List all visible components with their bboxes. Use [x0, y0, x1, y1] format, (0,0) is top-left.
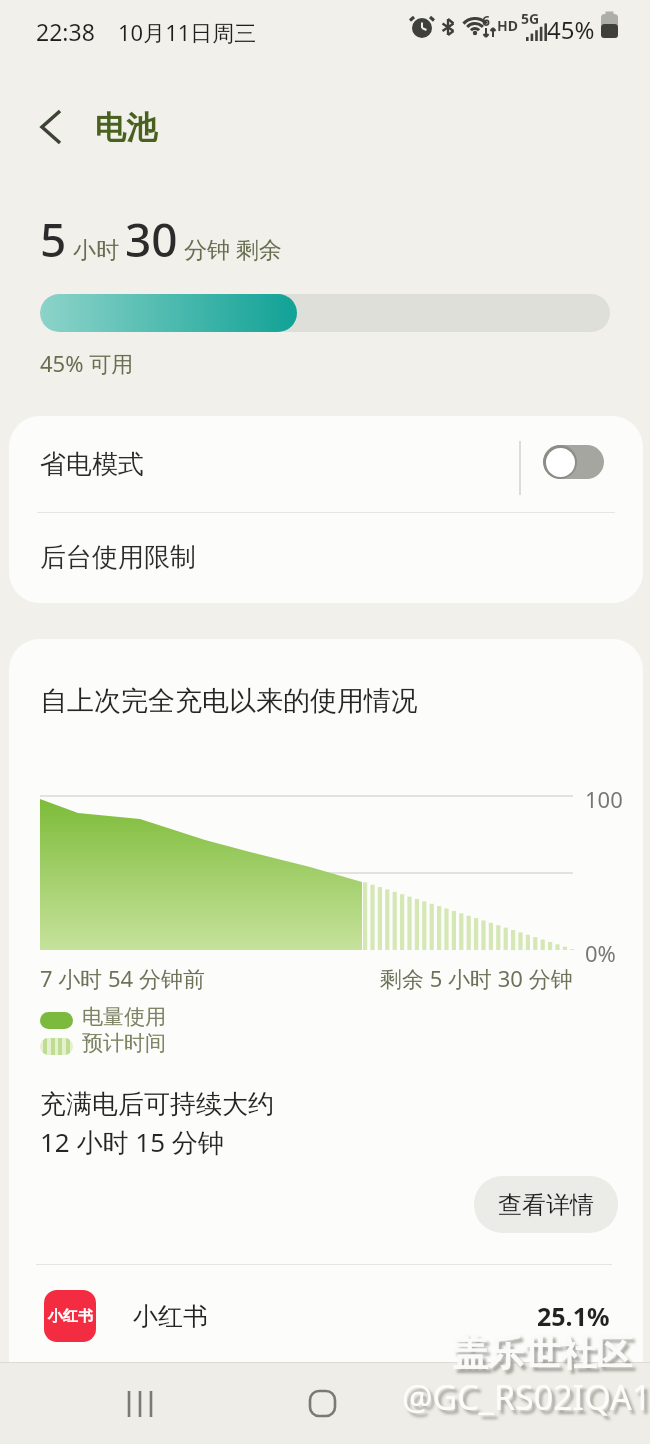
staticText: 电池 [95, 108, 157, 147]
staticText: 预计时间 [82, 1030, 166, 1056]
staticText: @GC_RS02IQA1 [402, 1374, 650, 1420]
button[interactable] [28, 103, 76, 151]
button[interactable]: 后台使用限制 [9, 512, 643, 603]
staticText: 22:38 [36, 16, 95, 47]
staticText: 5 [40, 208, 67, 271]
staticText: 电量使用 [82, 1004, 166, 1030]
staticText: 省电模式 [40, 448, 144, 481]
staticText: 充满电后可持续大约 [40, 1088, 274, 1121]
staticText: 剩余 5 小时 30 分钟 [380, 963, 573, 993]
staticText: 分钟 剩余 [178, 233, 282, 264]
staticText: 5G [521, 9, 540, 28]
button[interactable] [115, 1377, 167, 1429]
staticText: 小时 [67, 233, 125, 264]
button[interactable] [543, 445, 604, 479]
staticText: 30 [125, 208, 178, 271]
staticText: 0% [585, 938, 616, 968]
staticText: 盖乐世社区 [452, 1330, 632, 1375]
staticText: 查看详情 [498, 1190, 594, 1220]
button[interactable]: 省电模式 [9, 416, 643, 512]
staticText: 后台使用限制 [40, 541, 196, 574]
staticText: 10月11日周三 [118, 17, 257, 47]
button[interactable] [296, 1377, 348, 1429]
staticText: 7 小时 54 分钟前 [40, 963, 205, 993]
staticText: HD [497, 16, 518, 35]
button[interactable]: 小红书 [10, 1270, 640, 1362]
staticText: 自上次完全充电以来的使用情况 [40, 684, 418, 718]
button[interactable]: 查看详情 [474, 1176, 618, 1233]
staticText: 小红书 [48, 1307, 93, 1326]
staticText: 12 小时 15 分钟 [40, 1124, 224, 1160]
staticText: 45% [547, 13, 595, 46]
staticText: 6 [482, 11, 491, 30]
staticText: 小红书 [133, 1301, 208, 1332]
staticText: 25.1% [537, 1299, 610, 1333]
staticText: 100 [585, 784, 623, 814]
staticText: 45% 可用 [40, 348, 134, 378]
